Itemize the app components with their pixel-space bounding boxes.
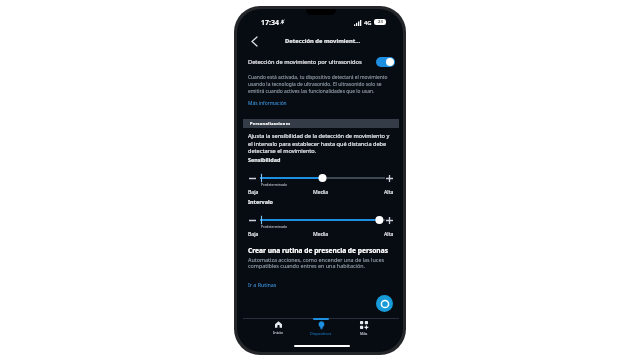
staticText: Cuando está activada, tu dispositivo det… <box>248 74 393 95</box>
staticText: Baja <box>248 188 259 195</box>
button[interactable]: Más <box>343 318 385 340</box>
staticText: Personalizaciones <box>250 121 291 126</box>
button[interactable]: Detección de movimiento por ultrasonidos <box>248 55 366 69</box>
staticText: 23 <box>378 19 383 25</box>
button[interactable]: Aumentar <box>384 173 395 184</box>
staticText: Detección de movimient… <box>285 37 361 45</box>
button[interactable]: Aumentar <box>384 215 395 226</box>
staticText: Predeterminado <box>261 182 288 187</box>
staticText: Alta <box>384 188 394 195</box>
staticText: Intervalo <box>248 198 273 205</box>
staticText: Media <box>313 230 329 237</box>
staticText: Crear una rutina de presencia de persona… <box>248 246 398 255</box>
button[interactable]: Reducir <box>247 173 258 184</box>
button[interactable]: Detección de movimiento por ultrasonidos <box>376 57 395 67</box>
staticText: Alta <box>384 230 394 237</box>
button[interactable]: Reducir <box>247 215 258 226</box>
staticText: 4G <box>364 19 372 27</box>
button[interactable]: Alexa <box>376 295 393 312</box>
staticText: 17:34 <box>261 18 279 28</box>
button[interactable]: Más información <box>248 99 293 107</box>
staticText: Predeterminado <box>261 224 288 229</box>
button[interactable]: Atrás <box>245 32 263 50</box>
button[interactable]: Inicio <box>257 318 299 340</box>
staticText: Detección de movimiento por ultrasonidos <box>248 58 362 66</box>
staticText: Ir a Rutinas <box>248 281 277 288</box>
staticText: Media <box>313 188 329 195</box>
staticText: Inicio <box>273 330 283 335</box>
staticText: Automatiza acciones, como encender una d… <box>248 256 388 270</box>
staticText: Más información <box>248 100 287 107</box>
button[interactable]: Dispositivos <box>300 318 342 340</box>
staticText: Dispositivos <box>310 331 332 336</box>
staticText: Más <box>360 331 368 336</box>
staticText: Baja <box>248 230 259 237</box>
button[interactable]: Ir a Rutinas <box>248 280 280 288</box>
staticText: Sensibilidad <box>248 156 281 163</box>
staticText: Ajusta la sensibilidad de la detección d… <box>248 132 393 154</box>
